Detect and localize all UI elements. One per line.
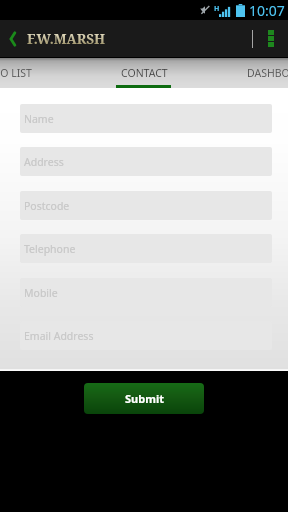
button[interactable]: F.W.MARSH [0, 20, 114, 57]
staticText: F.W.MARSH [27, 30, 106, 48]
staticText: Name [24, 112, 54, 126]
staticText: Postcode [24, 199, 70, 213]
button[interactable]: CONTACT [89, 58, 199, 88]
button[interactable]: Mobile [20, 278, 272, 307]
staticText: TO DO LIST [0, 66, 32, 80]
staticText: Mobile [24, 286, 58, 300]
button[interactable]: Submit [84, 383, 204, 414]
button[interactable]: Telephone [20, 234, 272, 263]
button[interactable]: Email Address [20, 321, 272, 350]
button[interactable]: Address [20, 147, 272, 176]
staticText: DASHBOARD [247, 66, 288, 80]
staticText: Telephone [24, 242, 76, 256]
staticText: Address [24, 155, 64, 169]
staticText: 10:07 [249, 1, 285, 20]
staticText: Submit [125, 391, 164, 406]
button[interactable]: DASHBOARD [224, 58, 288, 88]
button[interactable]: Postcode [20, 191, 272, 220]
staticText: CONTACT [121, 66, 168, 80]
button[interactable]: TO DO LIST [0, 58, 59, 88]
staticText: H [214, 4, 220, 14]
staticText: Email Address [24, 329, 94, 343]
button[interactable]: More options [253, 20, 288, 57]
